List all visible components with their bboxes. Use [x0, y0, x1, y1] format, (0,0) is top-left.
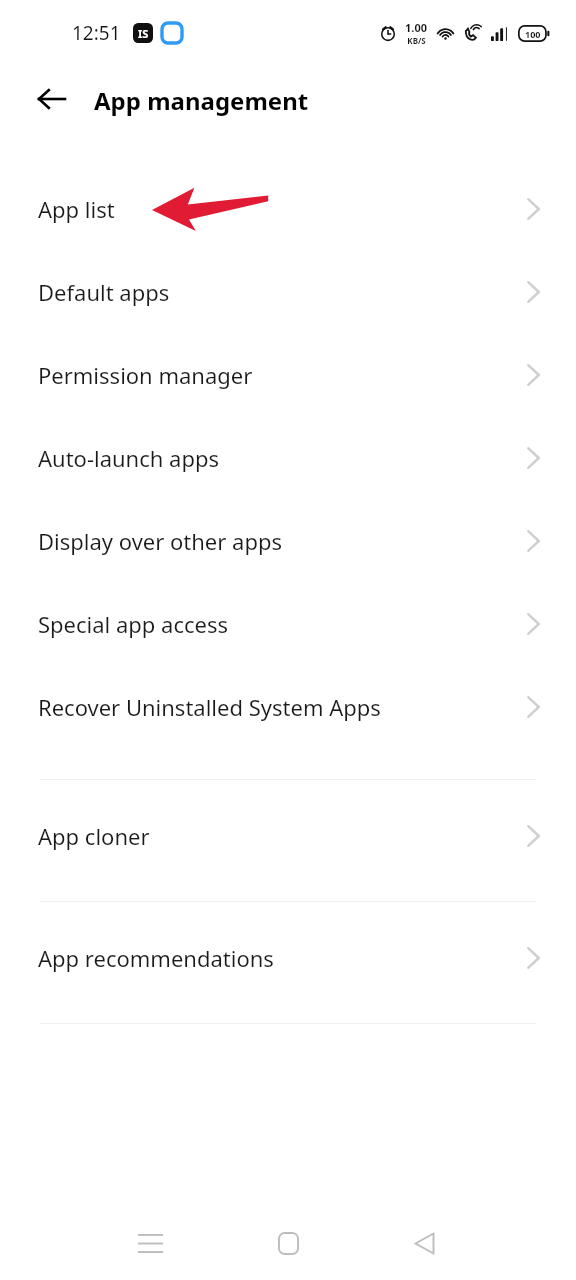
staticText: Recover Uninstalled System Apps	[38, 692, 381, 722]
button[interactable]: Back	[400, 1219, 448, 1267]
button[interactable]: Home	[264, 1219, 312, 1267]
button[interactable]: App list	[0, 167, 576, 250]
button[interactable]: Display over other apps	[0, 499, 576, 582]
button[interactable]: Recent apps	[126, 1219, 174, 1267]
button[interactable]: Default apps	[0, 250, 576, 333]
button[interactable]: Special app access	[0, 582, 576, 665]
staticText: Default apps	[38, 277, 170, 307]
staticText: Special app access	[38, 609, 229, 639]
staticText: App management	[94, 84, 309, 117]
button[interactable]: App cloner	[0, 794, 576, 877]
staticText: App cloner	[38, 821, 150, 851]
button[interactable]: Back	[27, 75, 75, 123]
button[interactable]: Permission manager	[0, 333, 576, 416]
staticText: Auto-launch apps	[38, 443, 220, 473]
button[interactable]: App recommendations	[0, 916, 576, 999]
staticText: KB/S	[407, 35, 426, 46]
button[interactable]: Auto-launch apps	[0, 416, 576, 499]
staticText: App recommendations	[38, 943, 274, 973]
staticText: 1.00	[405, 20, 427, 35]
staticText: Display over other apps	[38, 526, 283, 556]
staticText: Permission manager	[38, 360, 253, 390]
staticText: 12:51	[72, 20, 121, 46]
button[interactable]: Recover Uninstalled System Apps	[0, 665, 576, 748]
staticText: 100	[525, 28, 541, 40]
staticText: IS	[138, 26, 149, 41]
staticText: App list	[38, 194, 115, 224]
